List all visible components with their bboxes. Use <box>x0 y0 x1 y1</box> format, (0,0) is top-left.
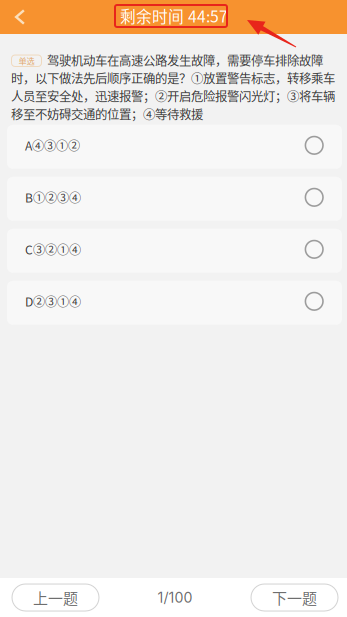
staticText: 剩余时间 44:57 <box>120 4 228 27</box>
staticText: 下一题 <box>272 587 317 608</box>
button[interactable]: Back <box>4 2 36 31</box>
staticText: A④③①② <box>25 137 80 154</box>
staticText: 上一题 <box>33 587 78 608</box>
button[interactable]: 上一题 <box>12 584 99 611</box>
button[interactable]: A④③①② <box>7 125 342 169</box>
button[interactable]: B①②③④ <box>7 177 342 221</box>
staticText: 1/100 <box>157 589 192 606</box>
staticText: 驾驶机动车在高速公路发生故障，需要停车排除故障时，以下做法先后顺序正确的是？①放… <box>11 51 335 123</box>
button[interactable]: 下一题 <box>251 584 338 611</box>
staticText: B①②③④ <box>25 189 81 206</box>
button[interactable]: C③②①④ <box>7 229 342 273</box>
staticText: D②③①④ <box>25 293 81 310</box>
staticText: C③②①④ <box>25 241 81 258</box>
staticText: 单选 <box>18 55 34 67</box>
button[interactable]: D②③①④ <box>7 281 342 325</box>
